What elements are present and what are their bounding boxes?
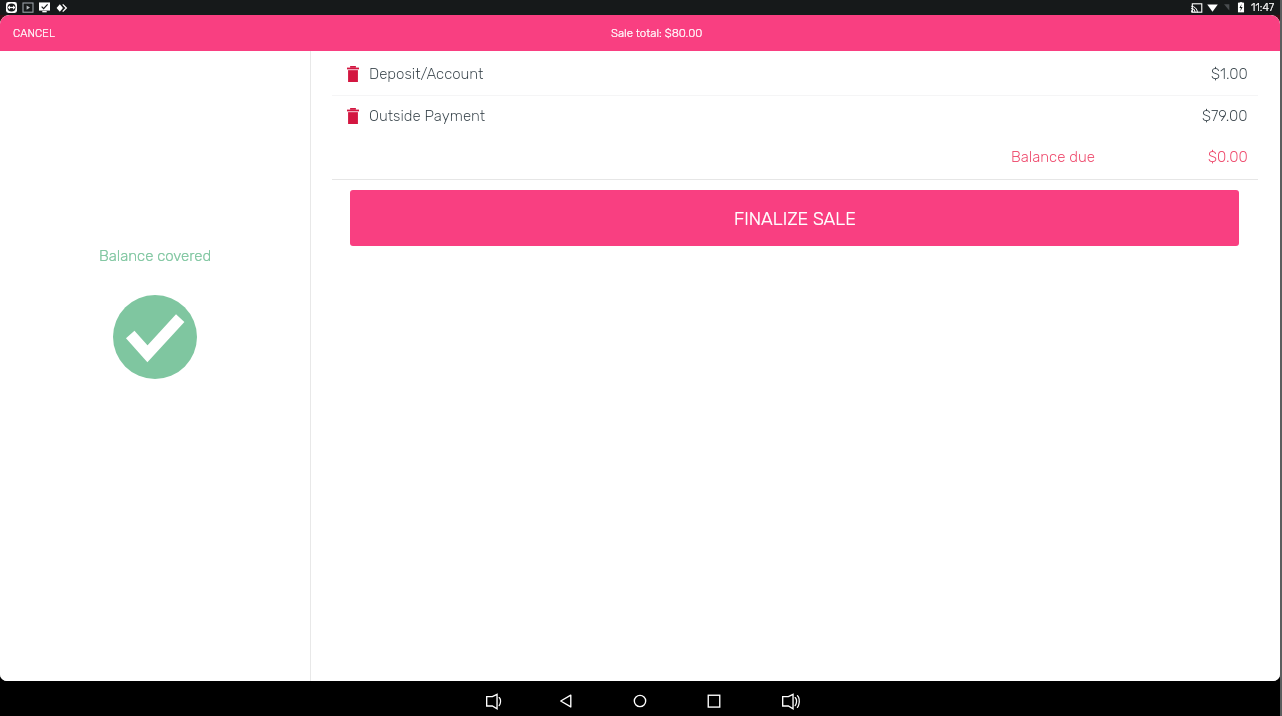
staticText: Deposit/Account [369,65,484,83]
staticText: Balance due [1011,148,1095,166]
staticText: 11:47 [1251,1,1275,14]
button[interactable]: Outside Payment [332,96,1258,135]
button[interactable]: FINALIZE SALE [350,190,1239,246]
button[interactable]: Deposit/Account [332,53,1258,95]
button[interactable]: Volume down [469,683,515,716]
staticText: $1.00 [1211,65,1248,83]
staticText: $79.00 [1202,107,1248,125]
staticText: Balance covered [99,247,212,265]
staticText: Sale total: $80.00 [611,26,703,40]
button[interactable]: Recent apps [691,683,737,716]
staticText: Outside Payment [369,107,486,125]
button[interactable]: CANCEL [0,15,69,51]
button[interactable]: Back [543,683,589,716]
button[interactable]: Volume up [765,683,811,716]
staticText: $0.00 [1208,148,1248,166]
staticText: CANCEL [13,27,56,40]
staticText: FINALIZE SALE [734,208,856,229]
button[interactable]: Home [617,683,663,716]
